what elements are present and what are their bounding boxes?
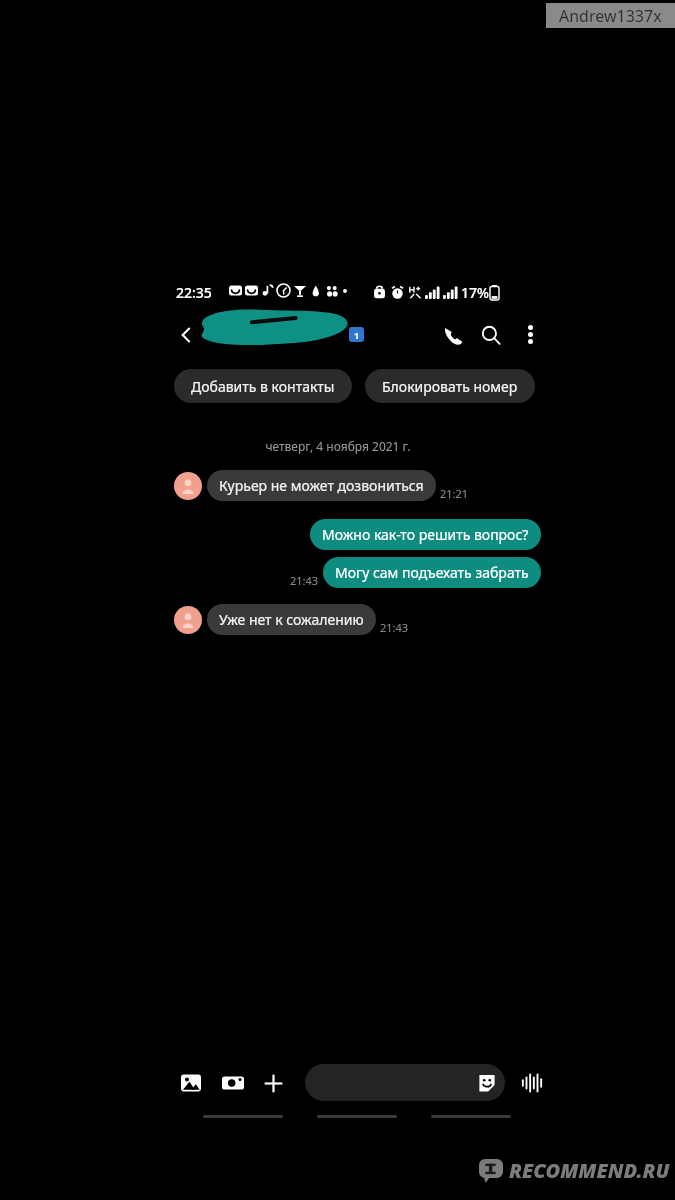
staticText: RECOMMEND.RU (509, 1157, 670, 1184)
staticText: 1 (354, 329, 360, 341)
staticText: 21:43 (380, 620, 409, 635)
button[interactable]: Back (170, 318, 204, 352)
button[interactable]: Stickers (305, 1064, 505, 1101)
button[interactable]: Stickers (476, 1072, 498, 1094)
button[interactable]: Call (435, 317, 471, 353)
staticText: Добавить в контакты (191, 377, 335, 396)
button[interactable]: Gallery (174, 1066, 208, 1100)
staticText: 22:35 (176, 283, 212, 302)
button[interactable]: Можно как-то решить вопрос? (310, 519, 541, 550)
staticText: четверг, 4 ноября 2021 г. (265, 438, 411, 454)
staticText: Можно как-то решить вопрос? (322, 525, 529, 544)
staticText: Курьер не может дозвониться (219, 476, 424, 495)
button[interactable]: Могу сам подъехать забрать (323, 557, 541, 588)
button[interactable]: Search (473, 317, 509, 353)
staticText: Уже нет к сожалению (219, 610, 364, 629)
staticText: Блокировать номер (382, 377, 518, 396)
button[interactable]: Voice message (515, 1066, 549, 1100)
staticText: Andrew1337x (559, 5, 662, 27)
button[interactable]: More options (513, 317, 547, 351)
staticText: 17% (461, 283, 489, 302)
staticText: 21:43 (290, 573, 319, 588)
button[interactable]: Add attachment (256, 1066, 290, 1100)
button[interactable]: Camera (216, 1066, 250, 1100)
button[interactable]: Добавить в контакты (174, 369, 352, 403)
button[interactable]: Курьер не может дозвониться (207, 470, 436, 501)
staticText: 21:21 (440, 486, 469, 501)
button[interactable]: Блокировать номер (365, 369, 535, 403)
staticText: Могу сам подъехать забрать (335, 563, 529, 582)
button[interactable]: Уже нет к сожалению (207, 604, 376, 635)
